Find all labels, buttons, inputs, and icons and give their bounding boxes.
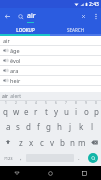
staticText: z — [19, 137, 23, 148]
staticText: LOOKUP — [16, 27, 35, 33]
staticText: k — [79, 121, 84, 132]
staticText: f — [37, 121, 40, 132]
button[interactable]: i — [71, 105, 81, 118]
button[interactable]: f — [33, 118, 43, 134]
staticText: SEARCH — [67, 27, 84, 33]
button[interactable]: SEARCH — [50, 25, 101, 34]
staticText: s — [16, 121, 20, 132]
button[interactable]: h — [54, 118, 65, 134]
staticText: 2 — [15, 101, 17, 105]
button[interactable]: n — [67, 134, 77, 150]
staticText: l — [91, 121, 94, 132]
staticText: o — [84, 106, 89, 117]
button[interactable]: t — [41, 105, 51, 118]
button[interactable]: a — [3, 118, 13, 134]
staticText: u — [64, 106, 69, 117]
staticText: 7 — [65, 101, 67, 105]
button[interactable]: y — [51, 105, 61, 118]
staticText: m — [78, 137, 86, 148]
button[interactable]: heir — [0, 76, 101, 85]
button[interactable]: LOOKUP — [0, 25, 50, 34]
button[interactable]: . — [74, 151, 84, 165]
staticText: c — [40, 137, 44, 148]
button[interactable]: b — [57, 134, 67, 150]
staticText: , — [20, 154, 22, 162]
staticText: i — [75, 106, 78, 117]
staticText: j — [69, 121, 72, 132]
staticText: âge — [10, 47, 20, 54]
staticText: r — [34, 106, 38, 117]
staticText: air — [27, 11, 36, 21]
button[interactable]: d — [23, 118, 33, 134]
button[interactable]: Search — [88, 153, 98, 163]
button[interactable]: x — [26, 134, 37, 150]
button[interactable]: âge — [0, 46, 101, 55]
staticText: y — [54, 106, 59, 117]
staticText: ?123 — [4, 156, 13, 161]
button[interactable]: , — [16, 151, 26, 165]
button[interactable]: air — [0, 36, 101, 45]
staticText: t — [45, 106, 48, 117]
staticText: 9 — [85, 101, 87, 105]
staticText: air — [2, 93, 9, 100]
button[interactable]: r — [31, 105, 41, 118]
button[interactable]: ara — [0, 66, 101, 75]
button[interactable]: q — [0, 105, 11, 118]
staticText: 8 — [75, 101, 77, 105]
staticText: 6 — [55, 101, 57, 105]
button[interactable]: o — [81, 105, 91, 118]
staticText: . — [78, 154, 80, 162]
button[interactable]: Search — [15, 11, 27, 23]
staticText: ēvol — [10, 57, 21, 64]
button[interactable]: e — [21, 105, 31, 118]
button[interactable]: Back — [0, 166, 33, 180]
button[interactable]: Shift — [0, 134, 15, 150]
staticText: b — [60, 137, 65, 148]
staticText: 4 — [35, 101, 37, 105]
staticText: h — [57, 121, 62, 132]
staticText: x — [29, 137, 34, 148]
button[interactable]: u — [61, 105, 71, 118]
button[interactable]: More options — [90, 11, 101, 22]
button[interactable]: Home — [33, 166, 67, 180]
staticText: air — [3, 37, 10, 44]
button[interactable]: p — [91, 105, 101, 118]
staticText: 0 — [95, 101, 97, 105]
button[interactable]: c — [37, 134, 47, 150]
staticText: 1 — [5, 101, 7, 105]
button[interactable]: w — [11, 105, 21, 118]
button[interactable]: Clear — [77, 10, 90, 23]
staticText: d — [26, 121, 31, 132]
button[interactable]: ?123 — [0, 151, 16, 165]
staticText: g — [46, 121, 51, 132]
button[interactable]: g — [43, 118, 54, 134]
staticText: w — [13, 106, 20, 117]
staticText: alert — [9, 93, 22, 100]
button[interactable]: Back — [0, 9, 15, 24]
staticText: n — [70, 137, 75, 148]
button[interactable]: l — [87, 118, 98, 134]
staticText: 3 — [25, 101, 27, 105]
staticText: 5 — [45, 101, 47, 105]
staticText: ara — [10, 67, 19, 74]
button[interactable]: Recent apps — [67, 166, 101, 180]
staticText: e — [24, 106, 29, 117]
staticText: p — [94, 106, 99, 117]
button[interactable]: z — [15, 134, 26, 150]
staticText: heir — [10, 77, 21, 84]
button[interactable]: m — [77, 134, 87, 150]
staticText: q — [3, 106, 8, 117]
staticText: v — [50, 137, 55, 148]
button[interactable]: k — [76, 118, 87, 134]
button[interactable]: ēvol — [0, 56, 101, 65]
staticText: 2:43 — [89, 1, 99, 8]
button[interactable]: s — [13, 118, 23, 134]
staticText: a — [6, 121, 11, 132]
button[interactable]: air — [2, 93, 22, 100]
button[interactable]: Delete — [87, 134, 101, 150]
button[interactable]: j — [65, 118, 76, 134]
button[interactable]: v — [47, 134, 57, 150]
